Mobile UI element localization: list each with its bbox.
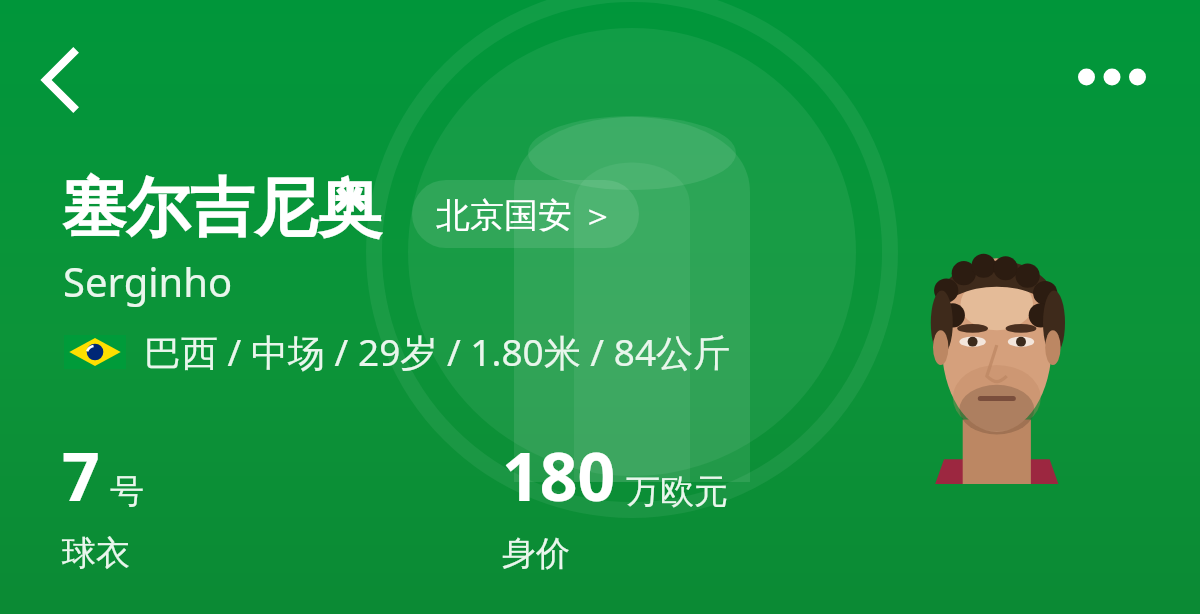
staticText: 巴西 / 中场 / 29岁 / 1.80米 / 84公斤: [144, 326, 731, 377]
staticText: 塞尔吉尼奥: [62, 168, 382, 249]
staticText: 身价: [502, 532, 570, 575]
staticText: 球衣: [62, 532, 130, 575]
button[interactable]: Back: [18, 44, 104, 116]
button[interactable]: More options: [1056, 40, 1168, 114]
staticText: 北京国安 ＞: [436, 191, 615, 237]
button[interactable]: 北京国安 ＞: [412, 180, 639, 248]
staticText: 万欧元: [626, 470, 728, 513]
staticText: 7: [62, 430, 100, 520]
staticText: 180: [502, 430, 616, 520]
staticText: 号: [110, 470, 144, 513]
staticText: Serginho: [63, 254, 233, 308]
